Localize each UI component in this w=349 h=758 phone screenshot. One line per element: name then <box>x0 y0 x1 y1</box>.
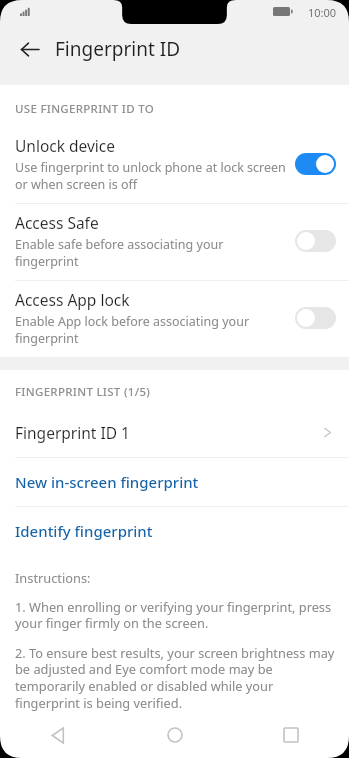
staticText: New in-screen fingerprint <box>15 472 199 492</box>
button[interactable]: Identify fingerprint <box>0 507 349 555</box>
button[interactable]: Access App lock <box>0 281 349 357</box>
staticText: 2. To ensure best results, your screen b… <box>15 644 335 712</box>
other: Access Safe toggle <box>295 230 336 252</box>
staticText: Access App lock <box>15 289 130 310</box>
button[interactable]: Unlock device <box>0 127 349 203</box>
other: Unlock device toggle <box>295 153 336 175</box>
staticText: Unlock device <box>15 135 116 156</box>
staticText: Fingerprint ID 1 <box>15 422 321 443</box>
staticText: 1. When enrolling or verifying your fing… <box>15 598 335 632</box>
staticText: Use fingerprint to unlock phone at lock … <box>15 159 286 192</box>
button[interactable]: New in-screen fingerprint <box>0 458 349 506</box>
staticText: Identify fingerprint <box>15 521 153 541</box>
staticText: Fingerprint ID <box>55 36 181 62</box>
button[interactable]: Recent apps <box>233 712 349 758</box>
staticText: 10:00 <box>308 5 337 20</box>
staticText: Instructions: <box>15 569 91 586</box>
staticText: FINGERPRINT LIST (1/5) <box>15 384 151 400</box>
staticText: 3. Screen protectors or dirt on the sens… <box>15 724 335 758</box>
other: Access App lock toggle <box>295 307 336 329</box>
button[interactable]: Home <box>117 712 233 758</box>
button[interactable]: Access Safe <box>0 204 349 280</box>
button[interactable]: Fingerprint ID 1 <box>0 408 349 457</box>
button[interactable]: Back <box>0 712 117 758</box>
staticText: USE FINGERPRINT ID TO <box>15 101 155 117</box>
staticText: Enable safe before associating your fing… <box>15 236 287 269</box>
staticText: Access Safe <box>15 212 99 233</box>
staticText: Enable App lock before associating your … <box>15 313 250 346</box>
button[interactable]: Back <box>10 30 48 68</box>
